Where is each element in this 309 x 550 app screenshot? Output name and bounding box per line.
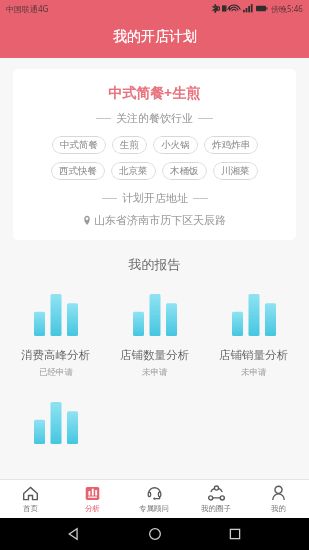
- button[interactable]: 首页: [0, 482, 61, 516]
- staticText: 傍晚5:46: [271, 3, 303, 14]
- button[interactable]: 我的圈子: [185, 482, 247, 516]
- staticText: 中式简餐: [60, 139, 98, 151]
- staticText: 我的报告: [0, 256, 309, 272]
- button[interactable]: 店铺销量分析: [204, 292, 303, 380]
- button[interactable]: 报告: [6, 402, 105, 444]
- staticText: 我的: [271, 504, 286, 513]
- button[interactable]: 专属顾问: [123, 482, 185, 516]
- button[interactable]: 木桶饭: [162, 162, 207, 180]
- staticText: 炸鸡炸串: [212, 139, 250, 151]
- button[interactable]: 中式简餐: [52, 136, 106, 154]
- button[interactable]: 店铺数量分析: [105, 292, 204, 380]
- button[interactable]: 小火锅: [153, 136, 198, 154]
- staticText: 小火锅: [161, 139, 190, 151]
- staticText: 中国联通4G: [6, 3, 49, 14]
- button[interactable]: 中式简餐+生煎: [13, 69, 296, 240]
- button[interactable]: Home: [148, 527, 162, 541]
- staticText: 分析: [85, 504, 100, 513]
- staticText: 店铺销量分析: [219, 348, 288, 362]
- staticText: 首页: [23, 504, 38, 513]
- staticText: 北京菜: [119, 165, 148, 177]
- staticText: 关注的餐饮行业: [116, 111, 193, 125]
- button[interactable]: 我的: [247, 482, 309, 516]
- button[interactable]: 川湘菜: [213, 162, 258, 180]
- staticText: 川湘菜: [221, 165, 250, 177]
- staticText: 计划开店地址: [122, 191, 188, 205]
- staticText: 专属顾问: [139, 504, 169, 513]
- button[interactable]: Back: [67, 527, 81, 541]
- staticText: 消费高峰分析: [21, 348, 90, 362]
- staticText: 西式快餐: [59, 165, 97, 177]
- staticText: 中式简餐+生煎: [108, 83, 201, 102]
- button[interactable]: 分析: [61, 482, 123, 516]
- staticText: 生煎: [120, 139, 139, 151]
- button[interactable]: 消费高峰分析: [6, 292, 105, 380]
- button[interactable]: 北京菜: [111, 162, 156, 180]
- staticText: 我的圈子: [201, 504, 231, 513]
- button[interactable]: 西式快餐: [51, 162, 105, 180]
- button[interactable]: Recents: [228, 527, 242, 541]
- staticText: 已经申请: [39, 367, 73, 378]
- staticText: 未申请: [142, 367, 168, 378]
- staticText: 未申请: [241, 367, 267, 378]
- button[interactable]: 炸鸡炸串: [204, 136, 258, 154]
- staticText: 山东省济南市历下区天辰路: [94, 213, 226, 227]
- staticText: 店铺数量分析: [120, 348, 189, 362]
- button[interactable]: 生煎: [112, 136, 147, 154]
- staticText: 我的开店计划: [113, 28, 197, 46]
- staticText: 木桶饭: [170, 165, 199, 177]
